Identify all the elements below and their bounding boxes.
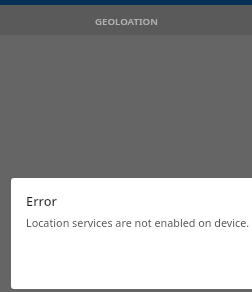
staticText: Error xyxy=(26,192,57,209)
staticText: GEOLOATION xyxy=(95,15,158,28)
staticText: Location services are not enabled on dev… xyxy=(26,215,250,230)
button[interactable]: Error dialog xyxy=(11,178,252,289)
button[interactable]: GEOLOATION xyxy=(0,5,252,35)
button[interactable]: Map xyxy=(0,35,252,292)
